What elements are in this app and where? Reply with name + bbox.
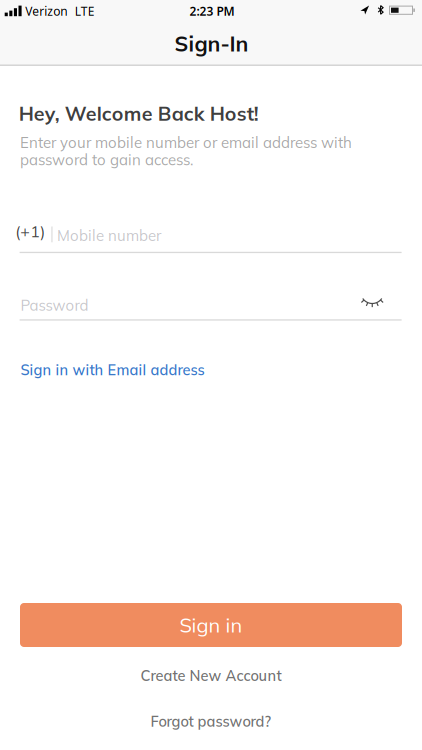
staticText: LTE [75, 3, 95, 19]
button[interactable]: Sign in [20, 603, 402, 647]
staticText: Verizon [25, 3, 67, 19]
staticText: Sign in [179, 612, 242, 638]
staticText: Sign-In [174, 30, 248, 57]
staticText: Create New Account [140, 666, 281, 684]
button[interactable]: Create New Account [0, 666, 422, 684]
staticText: Hey, Welcome Back Host! [19, 101, 259, 126]
staticText: Enter your mobile number or email addres… [20, 133, 352, 169]
staticText: Password [20, 296, 88, 314]
staticText: Sign in with Email address [20, 361, 204, 379]
staticText: (+1) [15, 221, 45, 241]
button[interactable]: Sign in with Email address [20, 361, 204, 379]
button[interactable]: Show password [362, 293, 382, 308]
staticText: 2:23 PM [189, 3, 234, 19]
staticText: Mobile number [57, 226, 161, 245]
staticText: Forgot password? [150, 712, 271, 730]
button[interactable]: Forgot password? [0, 712, 422, 730]
